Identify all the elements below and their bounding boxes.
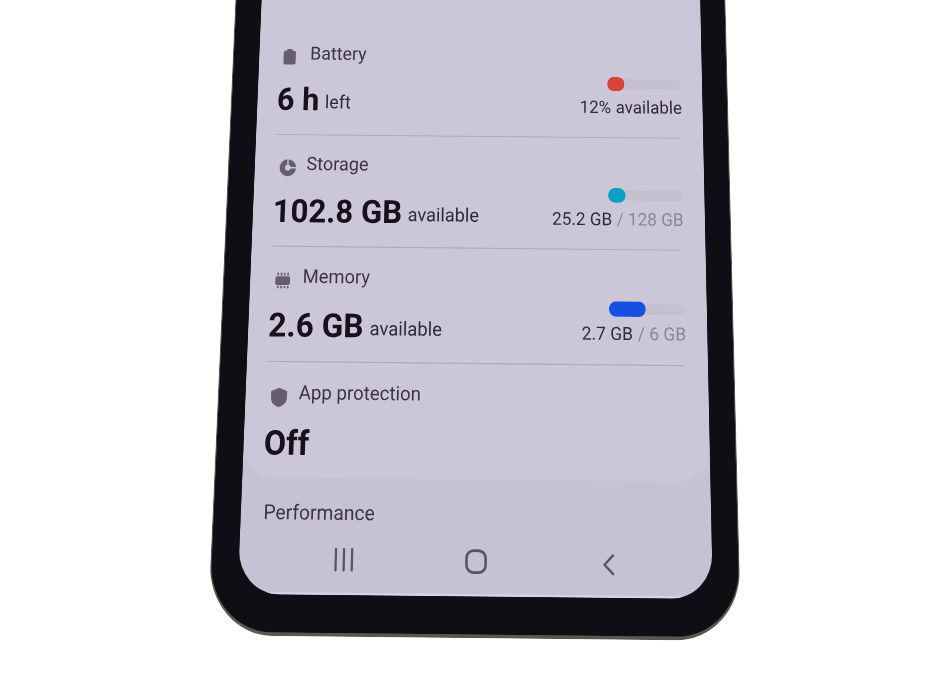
button[interactable]: Recent apps [310, 529, 377, 591]
staticText: Performance [263, 499, 375, 525]
staticText: 102.8 GB [272, 192, 403, 231]
staticText: Storage [306, 153, 370, 176]
staticText: available [611, 97, 682, 118]
button[interactable]: Back [576, 534, 642, 596]
staticText: 6 h [276, 81, 320, 117]
staticText: Battery [310, 43, 367, 65]
staticText: 2.7 GB [582, 323, 634, 344]
staticText: Memory [302, 265, 371, 289]
staticText: / [612, 209, 628, 230]
staticText: / [633, 323, 649, 345]
button[interactable]: Battery [256, 24, 703, 138]
staticText: 25.2 GB [552, 209, 612, 230]
staticText: available [407, 204, 479, 227]
button[interactable]: App protection [242, 361, 710, 485]
staticText: 128 GB [628, 209, 684, 230]
staticText: available [369, 317, 443, 341]
staticText: App protection [298, 381, 421, 406]
staticText: 2.6 GB [268, 305, 365, 345]
staticText: 12% [580, 97, 612, 117]
button[interactable]: Memory [247, 245, 708, 366]
button[interactable]: Home [443, 530, 509, 592]
staticText: Off [263, 423, 311, 463]
staticText: 6 GB [649, 324, 686, 345]
staticText: left [325, 92, 352, 114]
button[interactable]: Storage [252, 134, 706, 251]
